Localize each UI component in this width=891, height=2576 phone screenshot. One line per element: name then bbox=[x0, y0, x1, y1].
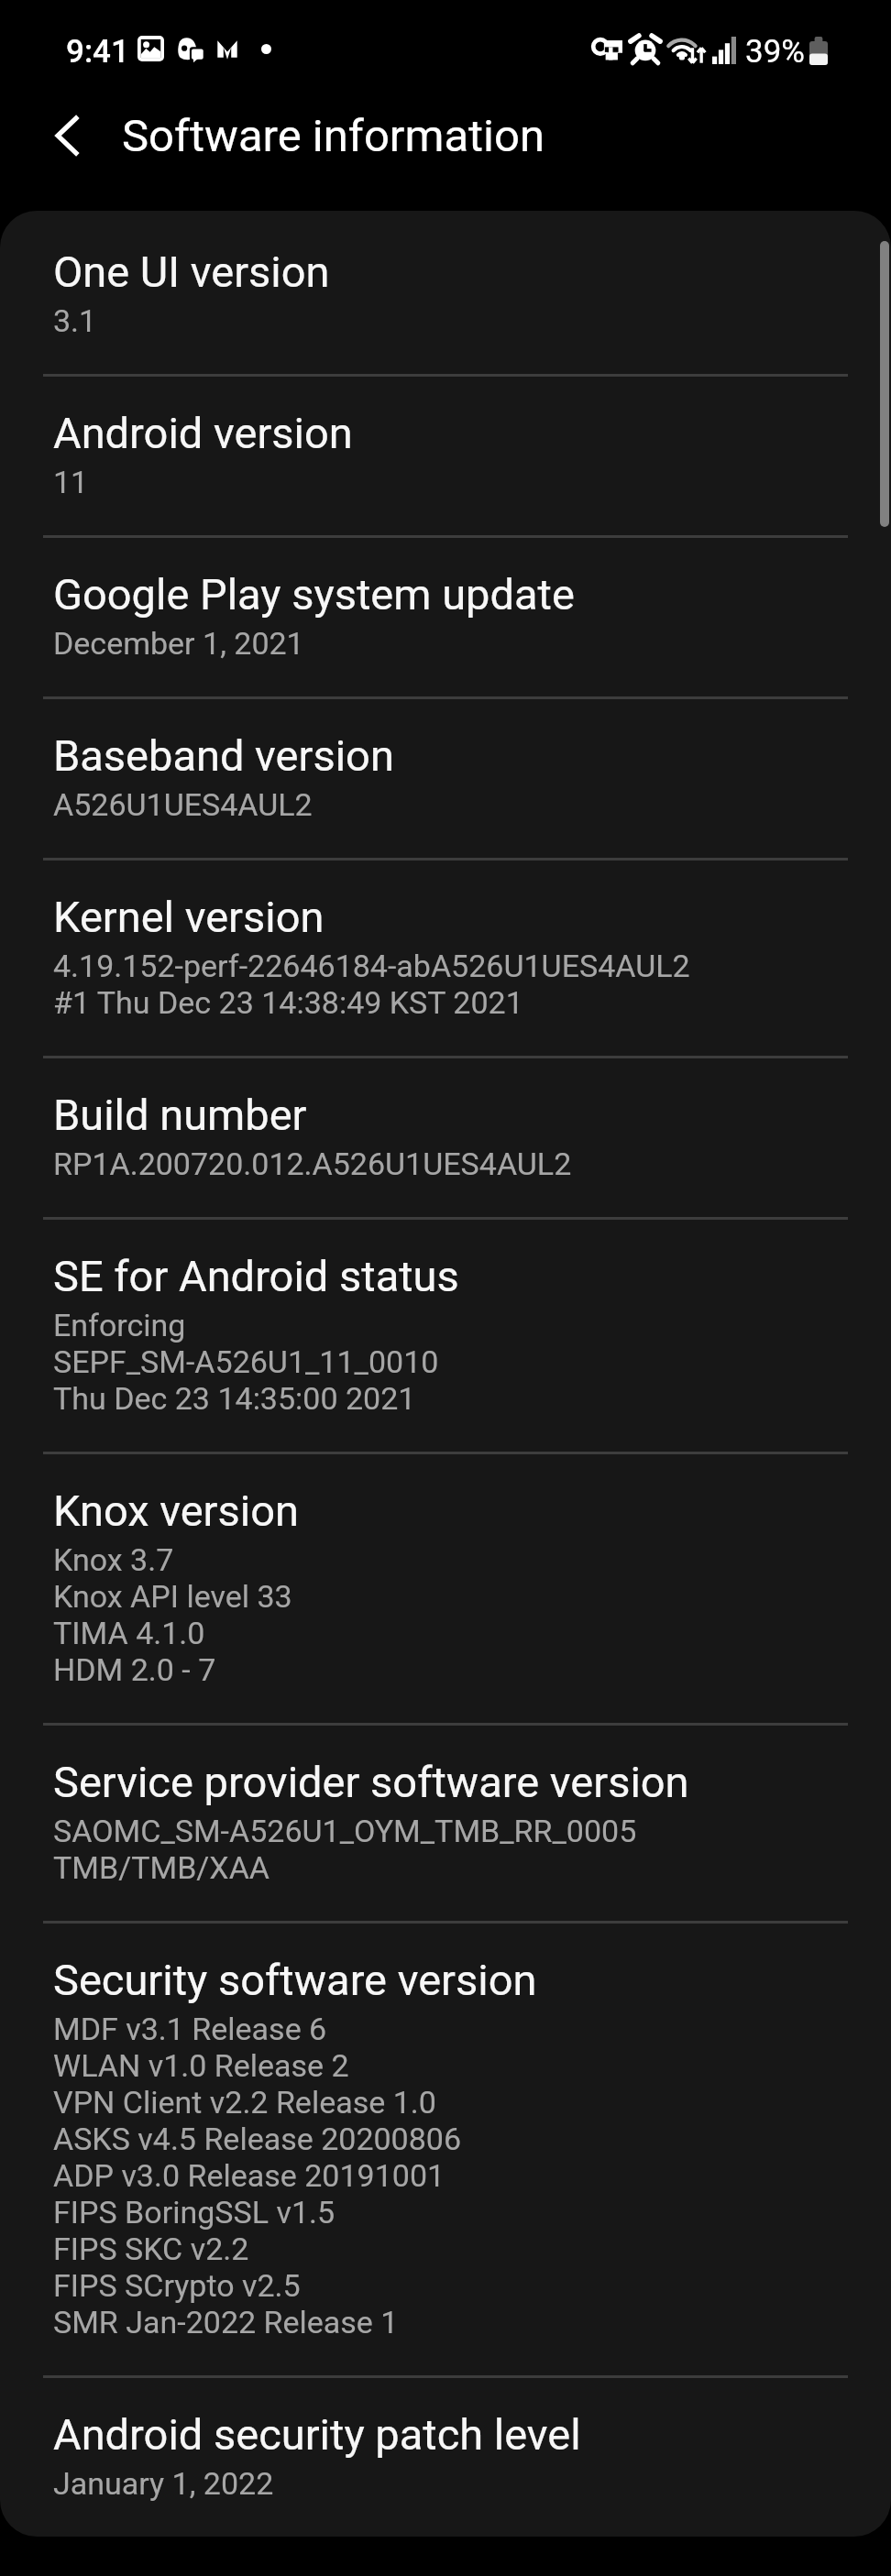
button[interactable]: Baseband version bbox=[0, 699, 891, 860]
button[interactable]: Security software version bbox=[0, 1924, 891, 2378]
staticText: SAOMC_SM-A526U1_OYM_TMB_RR_0005 TMB/TMB/… bbox=[53, 1813, 637, 1886]
staticText: Software information bbox=[122, 110, 545, 162]
staticText: Google Play system update bbox=[53, 569, 575, 619]
staticText: Service provider software version bbox=[53, 1757, 689, 1807]
staticText: Baseband version bbox=[53, 730, 394, 781]
staticText: Knox version bbox=[53, 1485, 299, 1536]
staticText: 11 bbox=[53, 464, 89, 500]
staticText: 3.1 bbox=[53, 302, 97, 339]
staticText: 4.19.152-perf-22646184-abA526U1UES4AUL2 … bbox=[53, 948, 690, 1021]
staticText: RP1A.200720.012.A526U1UES4AUL2 bbox=[53, 1145, 572, 1182]
staticText: Android security patch level bbox=[53, 2409, 581, 2460]
staticText: January 1, 2022 bbox=[53, 2465, 274, 2502]
staticText: Android version bbox=[53, 408, 353, 458]
staticText: SE for Android status bbox=[53, 1251, 459, 1301]
staticText: Security software version bbox=[53, 1955, 537, 2005]
staticText: One UI version bbox=[53, 247, 330, 297]
button[interactable]: Navigate up bbox=[18, 87, 115, 184]
staticText: December 1, 2021 bbox=[53, 625, 304, 662]
button[interactable]: One UI version bbox=[0, 215, 891, 377]
button[interactable]: Knox version bbox=[0, 1454, 891, 1726]
staticText: Enforcing SEPF_SM-A526U1_11_0010 Thu Dec… bbox=[53, 1307, 439, 1417]
button[interactable]: Android security patch level bbox=[0, 2378, 891, 2537]
button[interactable]: SE for Android status bbox=[0, 1220, 891, 1454]
staticText: A526U1UES4AUL2 bbox=[53, 786, 313, 823]
button[interactable]: Android version bbox=[0, 377, 891, 538]
staticText: Kernel version bbox=[53, 892, 324, 942]
button[interactable]: Kernel version bbox=[0, 860, 891, 1058]
staticText: 9:41 bbox=[66, 33, 129, 71]
button[interactable]: Google Play system update bbox=[0, 538, 891, 699]
button[interactable]: Service provider software version bbox=[0, 1726, 891, 1924]
staticText: 39% bbox=[745, 33, 805, 71]
button[interactable]: Build number bbox=[0, 1058, 891, 1220]
staticText: MDF v3.1 Release 6 WLAN v1.0 Release 2 V… bbox=[53, 2011, 462, 2340]
staticText: Build number bbox=[53, 1090, 307, 1140]
staticText: Knox 3.7 Knox API level 33 TIMA 4.1.0 HD… bbox=[53, 1541, 292, 1688]
